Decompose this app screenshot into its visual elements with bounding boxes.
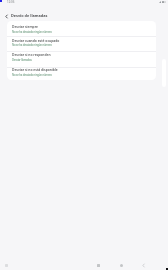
button[interactable]: Desviar siempre bbox=[7, 21, 156, 36]
button[interactable]: Back bbox=[139, 261, 147, 269]
staticText: Desviar cuando esté ocupado bbox=[12, 38, 60, 42]
staticText: No se ha desviado ningún número bbox=[12, 73, 52, 77]
staticText: Desviar si no está disponible bbox=[12, 67, 58, 71]
button[interactable]: Desviar cuando esté ocupado bbox=[7, 36, 156, 51]
button[interactable]: Desviar si no responden bbox=[7, 51, 156, 66]
staticText: Desvío de llamadas bbox=[11, 13, 48, 18]
button[interactable]: Recents bbox=[94, 261, 102, 269]
button[interactable]: Switch keyboard bbox=[2, 261, 10, 269]
staticText: Desviar siempre bbox=[12, 24, 38, 28]
button[interactable]: Home bbox=[117, 261, 125, 269]
staticText: No se ha desviado ningún número bbox=[12, 30, 52, 34]
staticText: Desviar llamadas bbox=[12, 58, 32, 62]
button[interactable]: Back bbox=[1, 11, 11, 21]
staticText: Desviar si no responden bbox=[12, 52, 51, 56]
staticText: No se ha desviado ningún número bbox=[12, 43, 52, 47]
staticText: 12:06 bbox=[7, 0, 15, 4]
button[interactable]: Desviar si no está disponible bbox=[7, 67, 156, 80]
